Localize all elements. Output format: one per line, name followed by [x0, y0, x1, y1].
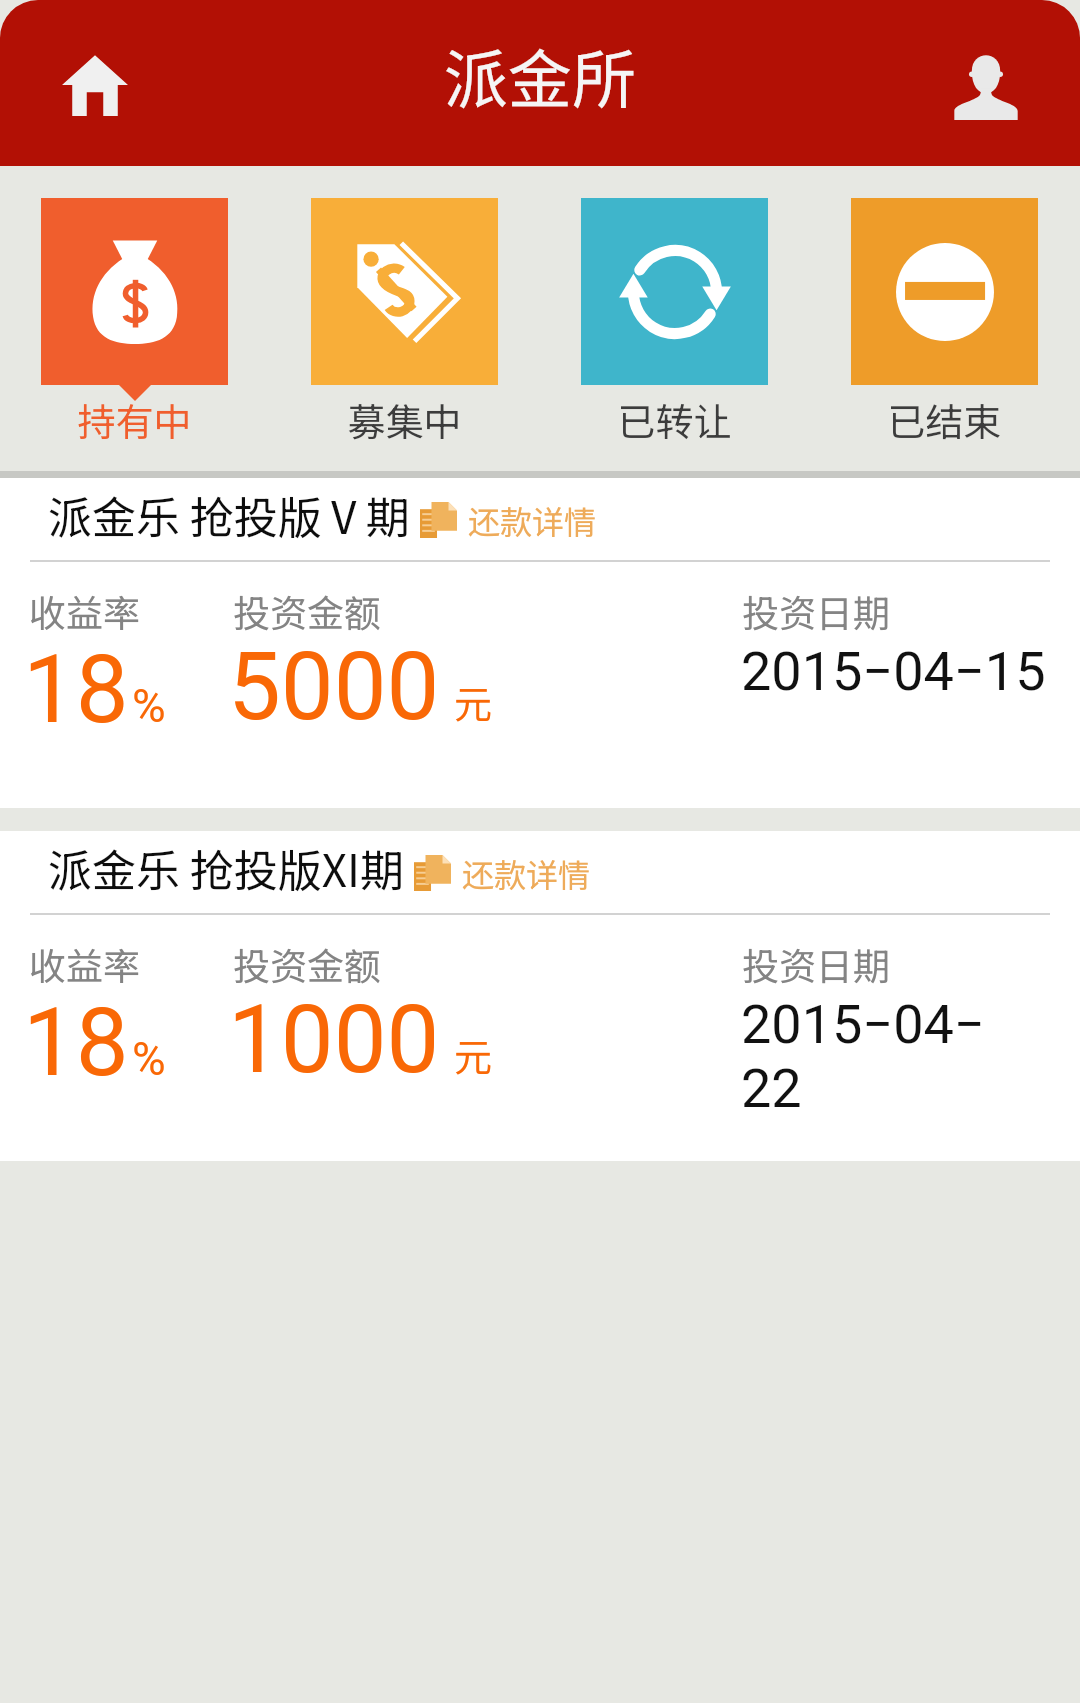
button[interactable]: 还款详情 [404, 844, 599, 902]
staticText: 18 [23, 635, 129, 745]
staticText: 投资金额 [233, 584, 381, 638]
button[interactable]: Home [40, 28, 150, 138]
staticText: 收益率 [29, 584, 140, 638]
button[interactable]: 还款详情 [410, 491, 605, 549]
staticText: 已结束 [851, 392, 1038, 447]
staticText: 2015−04− 22 [741, 993, 985, 1120]
staticText: 1000 [228, 985, 440, 1095]
staticText: 5000 [228, 632, 440, 742]
staticText: 派金乐 抢投版XI期 [48, 836, 404, 900]
staticText: % [132, 1032, 166, 1086]
button[interactable]: 已结束 [851, 198, 1038, 456]
button[interactable]: Profile [931, 28, 1041, 138]
staticText: 还款详情 [462, 850, 591, 896]
staticText: 元 [454, 674, 493, 729]
staticText: 收益率 [29, 937, 140, 991]
staticText: 投资日期 [742, 584, 890, 638]
staticText: 投资日期 [742, 937, 890, 991]
staticText: 18 [23, 988, 129, 1098]
staticText: 派金乐 抢投版Ⅴ期 [48, 483, 410, 547]
staticText: 元 [454, 1027, 493, 1082]
staticText: 募集中 [311, 392, 498, 447]
staticText: 2015−04−15 [741, 640, 1046, 703]
button[interactable]: 已转让 [581, 198, 768, 456]
staticText: 已转让 [581, 392, 768, 447]
button[interactable]: 持有中 [41, 198, 228, 456]
button[interactable]: 募集中 [311, 198, 498, 456]
staticText: 持有中 [41, 392, 228, 447]
staticText: 还款详情 [468, 497, 597, 543]
staticText: % [132, 679, 166, 733]
staticText: 投资金额 [233, 937, 381, 991]
staticText: 派金所 [444, 29, 636, 122]
